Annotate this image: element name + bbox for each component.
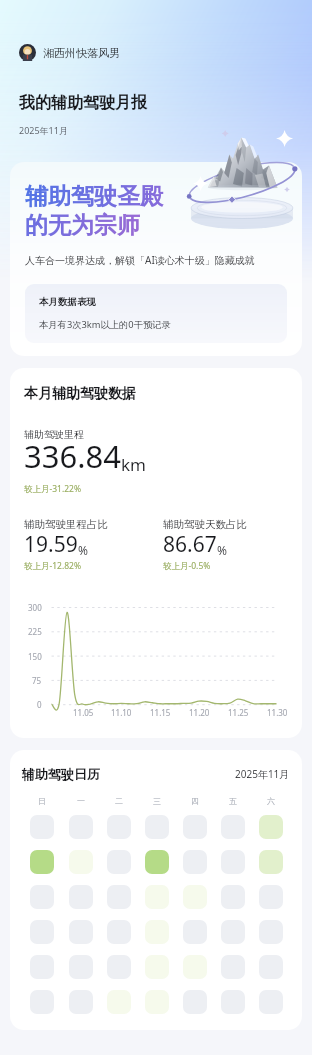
staticText: 本月辅助驾驶数据 (24, 385, 136, 403)
staticText: 六 (267, 796, 275, 806)
staticText: 二 (115, 796, 123, 806)
staticText: 辅助驾驶里程占比 (24, 518, 108, 531)
staticText: 湘西州快落风男 (43, 46, 120, 60)
button[interactable] (30, 955, 54, 979)
staticText: 较上月-31.22% (24, 483, 82, 495)
button[interactable] (30, 885, 54, 909)
button[interactable] (107, 920, 131, 944)
staticText: % (217, 542, 227, 558)
staticText: 11.05 (73, 707, 94, 718)
staticText: 336.84 (24, 435, 121, 477)
staticText: km (121, 453, 146, 476)
button[interactable] (145, 850, 169, 874)
button[interactable] (183, 885, 207, 909)
button[interactable] (259, 920, 283, 944)
button[interactable] (221, 920, 245, 944)
button[interactable] (107, 955, 131, 979)
staticText: 辅助驾驶日历 (22, 766, 100, 782)
button[interactable] (145, 955, 169, 979)
staticText: 三 (153, 796, 161, 806)
staticText: 2025年11月 (19, 124, 68, 136)
button[interactable] (259, 815, 283, 839)
button[interactable] (259, 885, 283, 909)
staticText: 11.25 (228, 707, 249, 718)
button[interactable] (221, 990, 245, 1014)
staticText: 75 (32, 675, 42, 686)
staticText: 我的辅助驾驶月报 (19, 93, 147, 113)
staticText: 11.20 (189, 707, 210, 718)
button[interactable] (221, 850, 245, 874)
button[interactable] (107, 885, 131, 909)
button[interactable] (145, 815, 169, 839)
staticText: 本月数据表现 (39, 296, 96, 308)
staticText: 一 (77, 796, 85, 806)
button[interactable] (183, 920, 207, 944)
button[interactable] (107, 990, 131, 1014)
button[interactable] (259, 850, 283, 874)
staticText: 较上月-12.82% (24, 560, 82, 572)
button[interactable] (30, 990, 54, 1014)
staticText: 19.59 (24, 530, 78, 559)
staticText: 11.15 (150, 707, 171, 718)
button[interactable] (145, 920, 169, 944)
staticText: 150 (28, 651, 42, 662)
button[interactable] (30, 850, 54, 874)
staticText: 人车合一境界达成，解锁「AI读心术十级」隐藏成就 (25, 253, 255, 267)
staticText: 0 (37, 699, 42, 710)
button[interactable] (30, 920, 54, 944)
button[interactable] (69, 815, 93, 839)
button[interactable] (259, 990, 283, 1014)
staticText: 225 (28, 626, 42, 637)
button[interactable] (183, 815, 207, 839)
staticText: 11.30 (267, 707, 288, 718)
staticText: 辅助驾驶圣殿 (25, 182, 163, 211)
staticText: 2025年11月 (235, 767, 290, 781)
button[interactable] (183, 955, 207, 979)
staticText: 300 (28, 602, 42, 613)
staticText: 86.67 (163, 530, 217, 559)
button[interactable] (221, 815, 245, 839)
button[interactable] (145, 990, 169, 1014)
button[interactable] (69, 920, 93, 944)
button[interactable] (183, 990, 207, 1014)
button[interactable] (107, 815, 131, 839)
button[interactable] (69, 850, 93, 874)
button[interactable] (30, 815, 54, 839)
staticText: 较上月-0.5% (163, 560, 211, 572)
staticText: 辅助驾驶天数占比 (163, 518, 247, 531)
staticText: 辅助驾驶里程 (24, 428, 84, 441)
button[interactable]: 湘西州快落风男 (19, 44, 120, 61)
staticText: 的无为宗师 (25, 211, 140, 240)
staticText: 本月有3次3km以上的0干预记录 (39, 318, 171, 331)
staticText: 11.10 (111, 707, 132, 718)
staticText: % (78, 542, 88, 558)
button[interactable] (69, 955, 93, 979)
button[interactable] (69, 885, 93, 909)
button[interactable] (145, 885, 169, 909)
staticText: 四 (191, 796, 199, 806)
staticText: 日 (38, 796, 46, 806)
button[interactable] (107, 850, 131, 874)
button[interactable] (69, 990, 93, 1014)
button[interactable] (221, 955, 245, 979)
button[interactable] (259, 955, 283, 979)
button[interactable] (183, 850, 207, 874)
staticText: 五 (229, 796, 237, 806)
button[interactable] (221, 885, 245, 909)
